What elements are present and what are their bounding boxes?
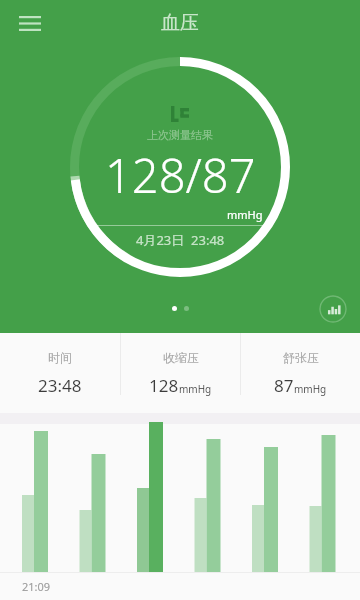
staticText: 时间 [48, 350, 72, 365]
button[interactable]: 舒张压 [241, 333, 360, 413]
staticText: 上次测量结果 [147, 128, 213, 142]
button[interactable]: Page 1 [172, 306, 177, 311]
staticText: mmHg [227, 207, 263, 222]
button[interactable]: Statistics chart [319, 295, 347, 323]
button[interactable]: Menu [10, 3, 50, 43]
staticText: 87 [274, 374, 294, 397]
button[interactable]: 收缩压 [121, 333, 240, 413]
staticText: 收缩压 [163, 350, 199, 365]
staticText: 128/87 [105, 143, 256, 207]
staticText: mmHg [179, 382, 212, 396]
staticText: mmHg [294, 382, 327, 396]
staticText: 128 [149, 374, 179, 397]
staticText: 舒张压 [283, 350, 319, 365]
staticText: 21:09 [22, 579, 51, 594]
staticText: 4月23日 23:48 [136, 231, 225, 249]
button[interactable]: Page 2 [184, 306, 189, 311]
button[interactable]: 时间 [0, 333, 120, 413]
staticText: 23:48 [38, 374, 82, 397]
staticText: 血压 [161, 11, 199, 35]
